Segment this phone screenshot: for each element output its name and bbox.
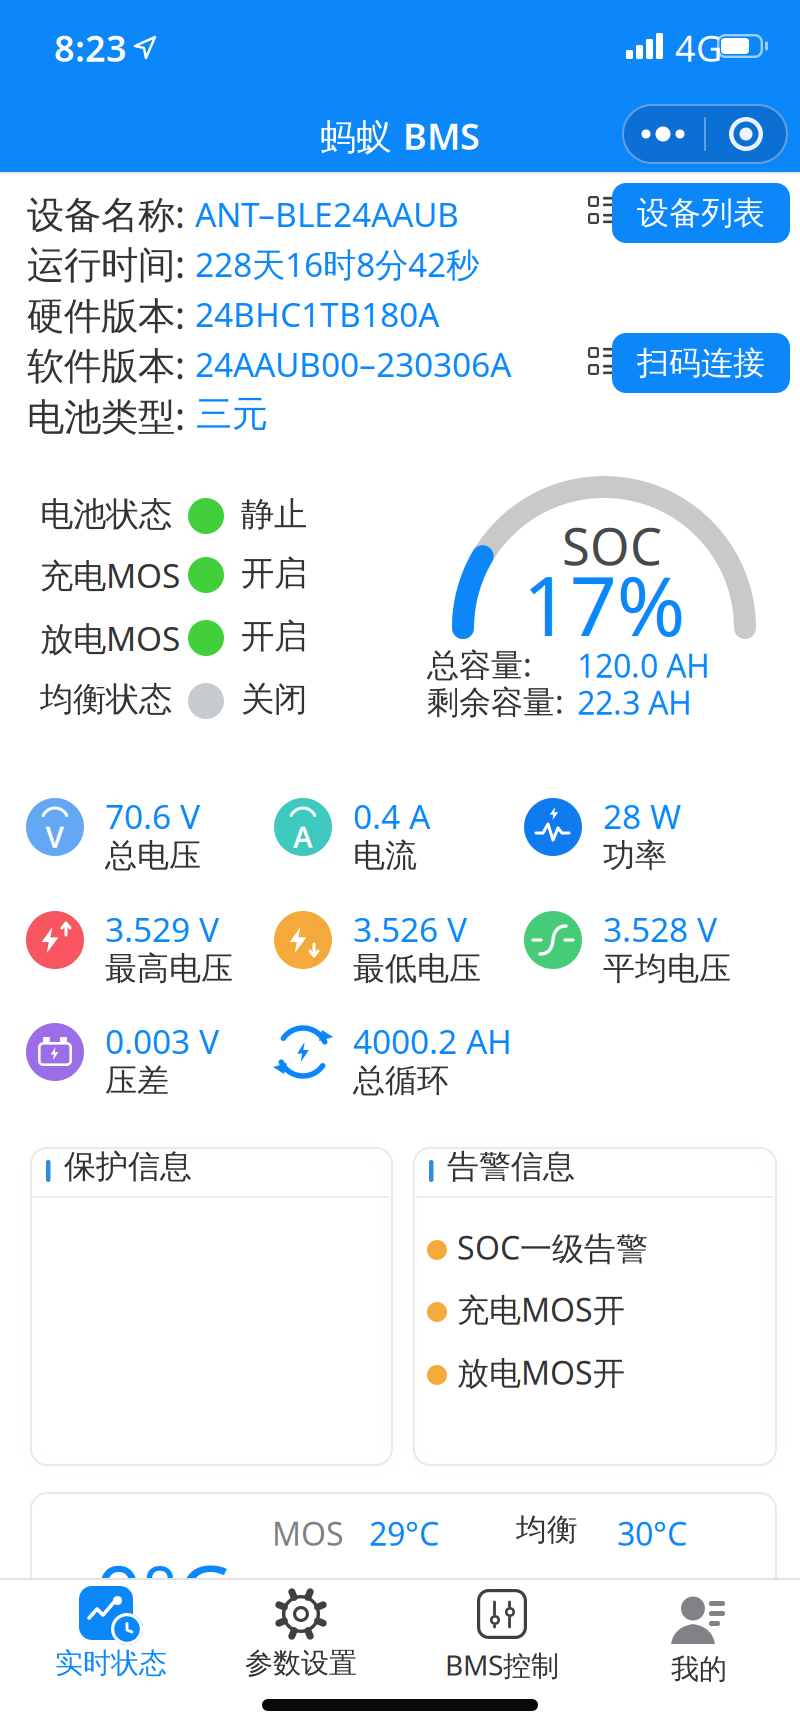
staticText: 设备列表 [637,193,765,233]
staticText: 29°C [369,1512,439,1554]
staticText: 17% [522,549,685,659]
button[interactable]: 实时状态 [26,1584,196,1696]
staticText: BMS控制 [445,1646,559,1683]
staticText: 蚂蚁 BMS [320,112,480,160]
staticText: 剩余容量: [427,680,564,722]
staticText: 扫码连接 [637,343,765,383]
staticText: 电池状态 [40,494,172,535]
staticText: 关闭 [241,679,307,720]
staticText: 均衡 [516,1511,578,1549]
staticText: 70.6 V [105,794,200,838]
staticText: 24AAUB00–230306A [195,342,511,386]
staticText: 设备名称: [27,189,185,239]
staticText: SOC [562,512,662,579]
staticText: 4G [675,24,722,72]
staticText: 软件版本: [27,340,185,390]
staticText: 0.003 V [105,1019,219,1063]
button[interactable]: 参数设置 [216,1584,386,1696]
staticText: 实时状态 [55,1646,167,1680]
staticText: 228天16时8分42秒 [195,242,479,286]
staticText: 电池类型: [27,391,185,441]
staticText: 充电MOS开 [457,1288,625,1330]
staticText: 压差 [105,1061,169,1100]
staticText: 功率 [603,836,667,875]
staticText: 24BHC1TB180A [195,292,439,336]
staticText: 120.0 AH [577,644,710,686]
staticText: 8:23 [54,24,127,72]
button[interactable]: 我的 [614,1584,784,1696]
staticText: 28 W [603,794,681,838]
staticText: 3.528 V [603,907,717,951]
button[interactable]: 关闭 [706,104,786,164]
staticText: 电流 [353,836,417,875]
staticText: 30°C [617,1512,687,1554]
staticText: A [293,817,313,856]
staticText: 保护信息 [64,1147,192,1186]
staticText: ANT–BLE24AAUB [195,192,459,236]
staticText: 开启 [241,616,307,657]
staticText: 我的 [671,1652,727,1686]
staticText: 运行时间: [27,239,185,289]
staticText: 4000.2 AH [353,1019,512,1063]
staticText: 放电MOS [40,616,180,660]
staticText: 最低电压 [353,949,481,988]
staticText: 均衡状态 [40,679,172,720]
staticText: 3.529 V [105,907,219,951]
staticText: 总循环 [353,1061,449,1100]
button[interactable]: 设备列表 [612,183,790,243]
button[interactable]: BMS控制 [417,1584,587,1696]
staticText: 参数设置 [245,1646,357,1680]
staticText: 三元 [196,392,268,436]
staticText: 最高电压 [105,949,233,988]
staticText: 0.4 A [353,794,430,838]
staticText: 开启 [241,553,307,594]
staticText: 总电压 [105,836,201,875]
staticText: 硬件版本: [27,290,185,340]
staticText: 总容量: [427,643,532,685]
staticText: V [45,817,64,856]
staticText: 3.526 V [353,907,467,951]
button[interactable]: 更多 [622,104,704,164]
staticText: 告警信息 [447,1147,575,1186]
staticText: 静止 [241,494,307,535]
staticText: 22.3 AH [577,681,692,723]
button[interactable]: 扫码连接 [612,333,790,393]
staticText: MOS [272,1512,344,1554]
staticText: SOC一级告警 [457,1226,648,1269]
staticText: 放电MOS开 [457,1351,625,1393]
staticText: 平均电压 [603,949,731,988]
staticText: 充电MOS [40,553,180,597]
staticText: 0°C [95,1538,229,1648]
